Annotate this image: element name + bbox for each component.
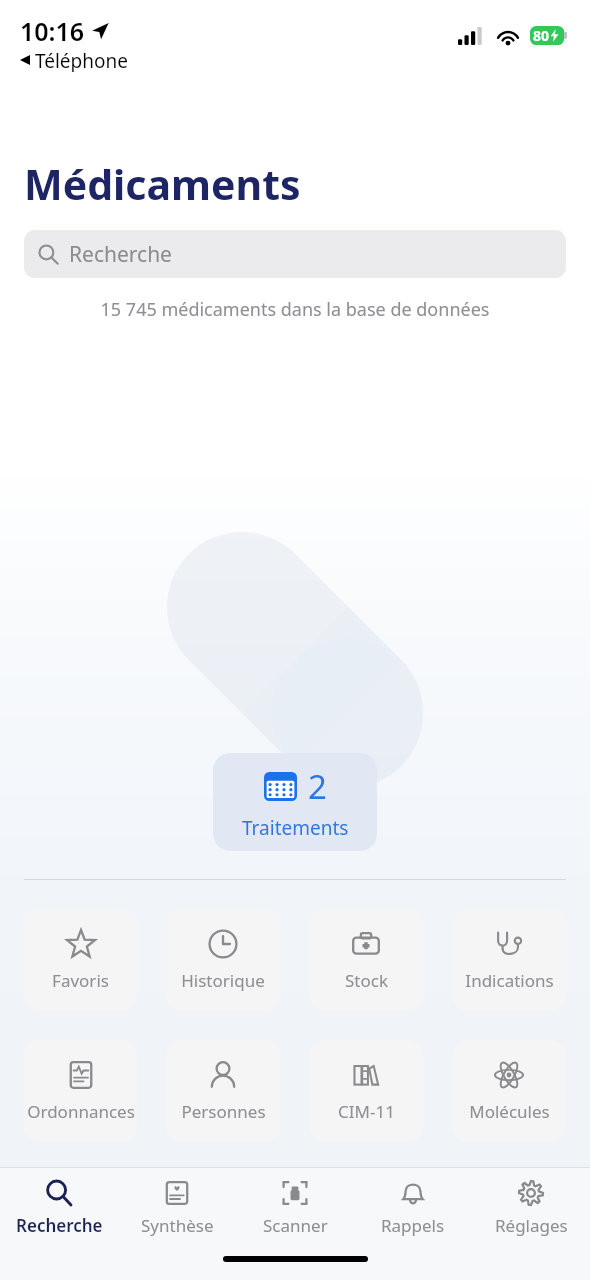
button[interactable]: Rappels bbox=[354, 1168, 472, 1246]
staticText: Synthèse bbox=[141, 1214, 214, 1237]
staticText: Indications bbox=[465, 969, 554, 992]
button[interactable]: Scanner bbox=[236, 1168, 354, 1246]
button[interactable]: Stock bbox=[309, 909, 423, 1011]
staticText: Téléphone bbox=[35, 48, 128, 72]
staticText: Molécules bbox=[469, 1100, 550, 1123]
button[interactable]: Synthèse bbox=[118, 1168, 236, 1246]
button[interactable]: Réglages bbox=[472, 1168, 590, 1246]
staticText: Stock bbox=[345, 969, 388, 992]
staticText: Scanner bbox=[263, 1214, 328, 1237]
staticText: Réglages bbox=[495, 1214, 568, 1237]
staticText: Rappels bbox=[381, 1214, 445, 1237]
staticText: Ordonnances bbox=[27, 1100, 135, 1123]
staticText: 80 bbox=[533, 26, 550, 45]
button[interactable]: Personnes bbox=[166, 1040, 280, 1142]
staticText: CIM-11 bbox=[338, 1100, 395, 1123]
staticText: Médicaments bbox=[24, 156, 301, 212]
staticText: Personnes bbox=[181, 1100, 266, 1123]
button[interactable]: Historique bbox=[166, 909, 280, 1011]
button[interactable]: Recherche bbox=[0, 1168, 118, 1246]
staticText: 10:16 bbox=[20, 14, 85, 48]
button[interactable]: Recherche bbox=[24, 230, 566, 278]
button[interactable]: Molécules bbox=[452, 1040, 566, 1142]
button[interactable]: Ordonnances bbox=[24, 1040, 137, 1142]
button[interactable]: 2 bbox=[213, 753, 377, 851]
staticText: 15 745 médicaments dans la base de donné… bbox=[0, 297, 590, 322]
staticText: Recherche bbox=[69, 240, 172, 269]
staticText: Historique bbox=[181, 969, 265, 992]
button[interactable]: Favoris bbox=[24, 909, 137, 1011]
staticText: Traitements bbox=[242, 815, 349, 841]
button[interactable]: CIM-11 bbox=[309, 1040, 423, 1142]
button[interactable]: Indications bbox=[452, 909, 566, 1011]
staticText: 2 bbox=[308, 764, 327, 809]
staticText: Recherche bbox=[16, 1214, 103, 1237]
staticText: Favoris bbox=[52, 969, 109, 992]
